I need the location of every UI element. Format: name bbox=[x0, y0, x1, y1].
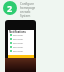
button[interactable]: Reminder bbox=[8, 49, 34, 53]
staticText: Reminder bbox=[13, 50, 24, 53]
staticText: Reminder bbox=[13, 38, 24, 41]
button[interactable]: Reminder bbox=[8, 37, 34, 41]
staticText: Reminder bbox=[13, 46, 24, 49]
staticText: homepage bbox=[20, 6, 36, 10]
staticText: 2 bbox=[7, 2, 13, 14]
button[interactable]: Reminder bbox=[8, 45, 34, 49]
button[interactable]: App logo bbox=[3, 1, 17, 15]
staticText: Configure bbox=[20, 2, 34, 6]
button[interactable]: Reminder bbox=[8, 41, 34, 45]
staticText: Reminder bbox=[13, 34, 24, 37]
button[interactable]: Reminder bbox=[8, 33, 34, 37]
staticText: Notifications bbox=[9, 30, 26, 33]
staticText: on web System bbox=[20, 10, 37, 17]
staticText: Reminder bbox=[13, 42, 24, 45]
